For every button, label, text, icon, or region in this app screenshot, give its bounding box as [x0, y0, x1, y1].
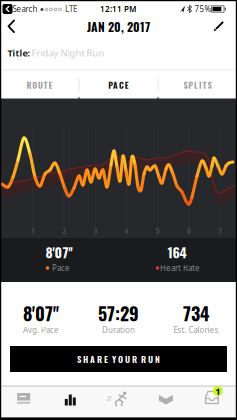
staticText: 3 [93, 227, 97, 235]
staticText: S H A R E Y O U R R U N [77, 353, 160, 365]
staticText: PACE [108, 79, 129, 91]
staticText: 4 [125, 227, 129, 235]
button[interactable]: ROUTE [0, 71, 78, 98]
staticText: 57:29 [98, 300, 139, 326]
staticText: Search [12, 4, 37, 14]
button[interactable]: Challenges [142, 386, 190, 419]
staticText: 7 [218, 227, 222, 235]
button[interactable]: Edit [210, 16, 228, 36]
staticText: Heart Rate [160, 263, 200, 273]
button[interactable]: Back to Search [2, 3, 13, 14]
staticText: 2 [62, 227, 66, 235]
button[interactable]: Activity [47, 386, 95, 419]
staticText: LTE [65, 4, 77, 14]
staticText: Avg. Pace [23, 325, 59, 335]
button[interactable]: PACE [79, 71, 157, 98]
button[interactable]: S H A R E Y O U R R U N [10, 346, 227, 372]
button[interactable]: Inbox [190, 386, 237, 419]
staticText: 8'07'' [45, 242, 72, 262]
staticText: 1 [215, 385, 220, 397]
staticText: Duration [102, 325, 135, 335]
button[interactable]: Back [2, 15, 22, 37]
staticText: 6 [187, 227, 191, 235]
staticText: 8'07'' [23, 300, 59, 326]
staticText: SPLITS [183, 79, 211, 91]
staticText: JAN 20, 2017 [87, 18, 150, 35]
staticText: 12:11 PM [100, 4, 136, 14]
staticText: Est. Calories [173, 325, 218, 335]
button[interactable]: Title: [0, 40, 237, 70]
staticText: 75% [194, 4, 211, 14]
staticText: 5 [156, 227, 160, 235]
staticText: 1 [31, 227, 35, 235]
button[interactable]: Run [95, 386, 142, 419]
button[interactable]: Feed [0, 386, 47, 419]
staticText: 164 [167, 242, 186, 262]
staticText: 734 [183, 300, 209, 326]
button[interactable]: SPLITS [158, 71, 236, 98]
staticText: ROUTE [26, 79, 53, 91]
staticText: Title: [7, 47, 30, 59]
staticText: Friday Night Run [31, 47, 104, 59]
staticText: Pace [52, 263, 70, 273]
